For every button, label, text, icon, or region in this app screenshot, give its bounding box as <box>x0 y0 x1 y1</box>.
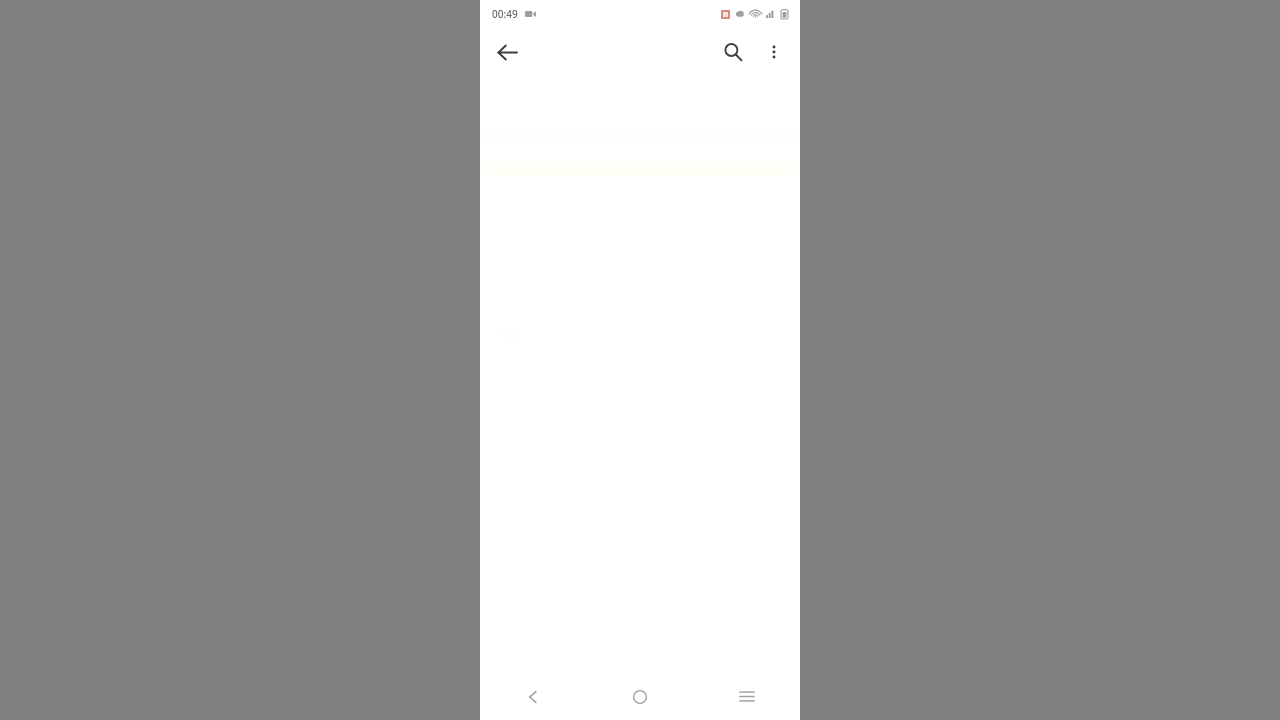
button[interactable]: More options <box>754 32 794 72</box>
button[interactable]: Back <box>480 673 586 720</box>
button[interactable]: Home <box>586 673 693 720</box>
button[interactable]: Navigate up <box>487 32 527 72</box>
staticText: 00:49 <box>492 7 518 21</box>
button[interactable]: Recent apps <box>693 673 800 720</box>
button[interactable]: Search <box>713 32 753 72</box>
